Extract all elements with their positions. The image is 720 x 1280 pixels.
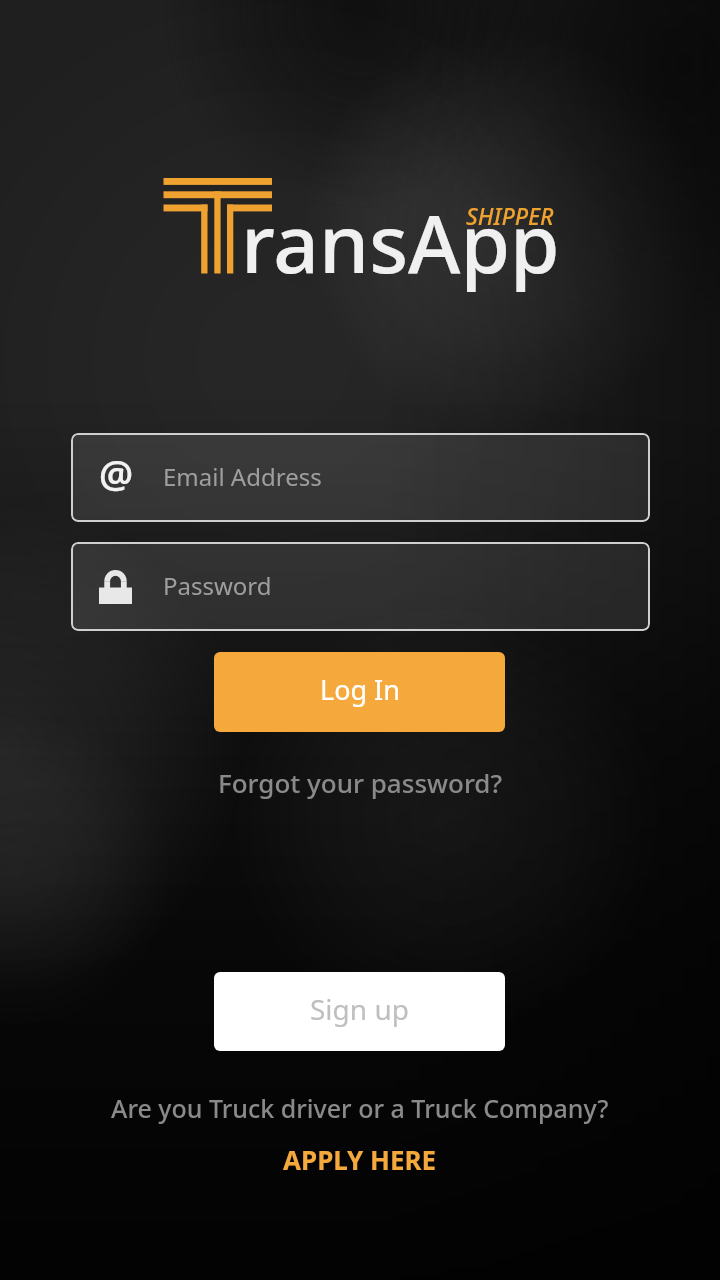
other: Email address — [96, 448, 136, 508]
staticText: @ — [99, 447, 134, 499]
button[interactable]: Password — [71, 542, 650, 631]
staticText: Email Address — [163, 460, 322, 493]
staticText: SHIPPER — [466, 200, 554, 231]
other: Password — [99, 570, 132, 604]
button[interactable]: APPLY HERE — [0, 1138, 720, 1180]
button[interactable]: Forgot your password? — [0, 759, 720, 805]
staticText: ransApp — [241, 187, 560, 296]
button[interactable]: Sign up — [214, 972, 505, 1051]
staticText: Sign up — [310, 990, 409, 1028]
button[interactable]: Email address — [71, 433, 650, 522]
staticText: Password — [163, 569, 272, 602]
staticText: Forgot your password? — [218, 765, 503, 800]
staticText: APPLY HERE — [283, 1142, 437, 1177]
button[interactable]: Log In — [214, 652, 505, 732]
staticText: Are you Truck driver or a Truck Company? — [111, 1091, 609, 1125]
staticText: Log In — [320, 671, 400, 708]
